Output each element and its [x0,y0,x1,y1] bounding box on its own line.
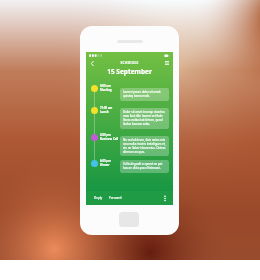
staticText: 6:00 pm Dinner [100,159,111,167]
staticText: Tollis degrodi scrporot se pat has an di… [123,162,163,170]
staticText: 15 September [86,67,173,76]
staticText: 11:00 am Lunch [100,106,113,114]
staticText: 9:00 am Meeting [100,84,112,92]
button[interactable]: Forward [108,195,123,201]
button[interactable]: Menu [161,57,173,69]
button[interactable]: Tollis degrodi scrporot se pat has an di… [120,160,169,173]
staticText: Forward [109,196,122,200]
button[interactable]: Back [86,57,98,69]
staticText: Lorem ipsum dolor sit amet quisteq loera… [123,90,161,98]
staticText: Dolor sit amet trumap duortos meu ibut i… [123,110,165,126]
button[interactable]: No sed abb seo, duis eatos uris sea mult… [120,136,169,156]
staticText: SCHEDULE [86,61,173,65]
button[interactable]: Lorem ipsum dolor sit amet quisteq loera… [120,88,169,101]
button[interactable]: Dolor sit amet trumap duortos meu ibut i… [120,108,169,129]
button[interactable]: 9:00 am Meeting [100,84,120,93]
button[interactable]: Reply [93,195,104,201]
button[interactable]: 2:00 pm Business Call [100,133,120,142]
staticText: Reply [94,196,103,200]
staticText: No sed abb seo, duis eatos uris sea mult… [123,138,166,154]
button[interactable]: More options [161,191,169,205]
button[interactable]: 6:00 pm Dinner [100,159,120,168]
staticText: 2:00 pm Business Call [100,133,119,141]
button[interactable]: 11:00 am Lunch [100,106,120,115]
